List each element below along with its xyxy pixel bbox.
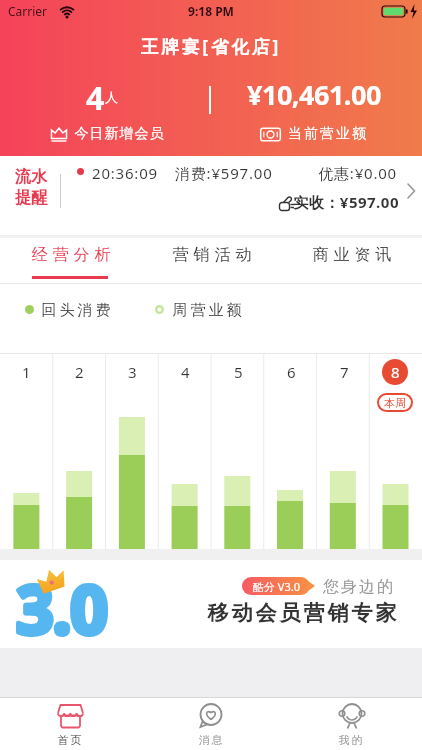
staticText: 移动会员营销专家: [206, 600, 398, 626]
staticText: 1: [22, 362, 31, 382]
staticText: 7: [340, 362, 349, 382]
staticText: 当前营业额: [287, 125, 367, 143]
staticText: 优惠:¥0.00: [280, 163, 397, 183]
staticText: 6: [287, 362, 296, 382]
staticText: 8: [391, 362, 400, 382]
staticText: 3: [128, 362, 137, 382]
staticText: 回头消费: [40, 301, 112, 320]
staticText: 人: [105, 89, 118, 105]
staticText: 20:36:09: [92, 163, 158, 183]
staticText: 本周: [384, 396, 406, 410]
staticText: 4: [86, 76, 105, 110]
staticText: 4: [181, 362, 190, 382]
staticText: 我的: [281, 733, 422, 747]
staticText: 经营分析: [29, 245, 113, 265]
staticText: 首页: [0, 733, 141, 747]
staticText: 2: [75, 362, 84, 382]
staticText: 实收：¥597.00: [250, 192, 399, 212]
staticText: Carrier: [8, 3, 48, 19]
staticText: 9:18 PM: [0, 3, 422, 19]
staticText: 您身边的: [322, 577, 394, 597]
staticText: 今日新增会员: [74, 125, 164, 143]
staticText: 3.0: [16, 563, 108, 653]
staticText: 3.0: [16, 563, 108, 653]
staticText: 提醒: [15, 188, 47, 208]
staticText: 5: [234, 362, 243, 382]
staticText: 流水: [15, 167, 47, 187]
staticText: 周营业额: [171, 301, 243, 320]
staticText: 王牌宴[省化店]: [0, 34, 422, 58]
staticText: 消息: [141, 733, 282, 747]
staticText: 商业资讯: [310, 245, 394, 265]
staticText: 消费:¥597.00: [175, 163, 273, 183]
staticText: ¥10,461.00: [247, 76, 381, 110]
staticText: 酷分 V3.0: [253, 579, 300, 594]
staticText: 营销活动: [170, 245, 254, 265]
